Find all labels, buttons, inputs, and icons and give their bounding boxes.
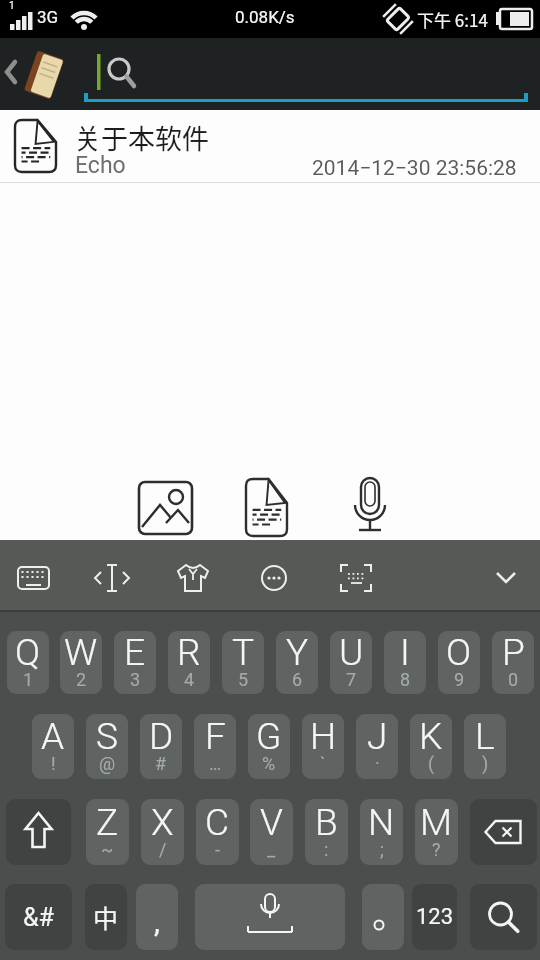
staticText: : [324,839,329,860]
button[interactable]: Q [7,631,49,694]
button[interactable]: A [32,714,74,779]
staticText: 0.08K/s [235,7,295,27]
staticText: # [155,753,167,774]
button[interactable] [0,110,540,183]
staticText: M [420,801,453,844]
staticText: 4 [184,669,195,690]
staticText: 3G [37,7,59,27]
button[interactable]: X [141,799,184,865]
button[interactable] [171,556,215,600]
button[interactable] [0,38,40,110]
button[interactable]: L [464,714,506,779]
button[interactable] [195,884,345,950]
button[interactable]: 123 [412,884,457,950]
staticText: Z [96,801,119,844]
staticText: U [339,631,364,674]
staticText: ! [51,753,56,774]
staticText: K [419,715,443,758]
button[interactable]: O [438,631,480,694]
staticText: 关于本软件 [74,118,209,157]
staticText: O [446,631,472,674]
button[interactable]: K [410,714,452,779]
staticText: &# [23,903,54,932]
staticText: - [215,839,220,860]
button[interactable]: M [415,799,458,865]
button[interactable]: J [356,714,398,779]
staticText: ` [320,753,326,774]
button[interactable] [132,475,198,541]
staticText: N [368,801,395,844]
button[interactable] [12,556,56,600]
staticText: V [260,801,283,844]
button[interactable] [470,884,537,950]
button[interactable]: F [194,714,236,779]
button[interactable]: , [136,884,178,950]
button[interactable]: U [330,631,372,694]
staticText: · [375,753,380,774]
button[interactable] [342,472,398,542]
button[interactable] [6,799,71,865]
staticText: 3 [130,669,141,690]
button[interactable]: V [250,799,293,865]
staticText: @ [99,753,116,774]
button[interactable]: E [114,631,156,694]
button[interactable] [484,556,528,600]
button[interactable]: B [305,799,348,865]
staticText: 9 [454,669,465,690]
button[interactable] [90,556,134,600]
staticText: H [310,715,337,758]
button[interactable]: N [360,799,403,865]
staticText: Q [15,631,41,674]
staticText: R [177,631,201,674]
staticText: , [154,904,160,939]
button[interactable]: Y [276,631,318,694]
staticText: _ [267,839,276,860]
button[interactable]: G [248,714,290,779]
staticText: ) [482,753,489,774]
button[interactable] [470,799,537,865]
staticText: ? [432,839,441,860]
button[interactable] [362,884,404,950]
staticText: ( [428,753,435,774]
staticText: B [315,801,338,844]
staticText: 7 [346,669,357,690]
staticText: ~ [101,839,114,860]
staticText: J [367,715,388,758]
button[interactable]: C [196,799,239,865]
button[interactable]: Z [86,799,129,865]
button[interactable]: I [384,631,426,694]
staticText: X [151,801,174,844]
button[interactable]: S [86,714,128,779]
button[interactable]: P [492,631,534,694]
staticText: … [209,753,222,774]
button[interactable]: R [168,631,210,694]
staticText: 1 [9,0,15,12]
button[interactable]: H [302,714,344,779]
staticText: L [475,715,495,758]
button[interactable] [252,556,296,600]
staticText: 1 [23,669,34,690]
button[interactable]: D [140,714,182,779]
button[interactable]: &# [5,884,72,950]
staticText: Echo [75,152,126,179]
staticText: 2 [76,669,87,690]
staticText: D [149,715,174,758]
staticText: 6 [292,669,303,690]
staticText: A [41,715,65,758]
staticText: 123 [416,904,454,930]
button[interactable] [84,44,528,104]
staticText: P [502,631,525,674]
staticText: 2014−12−30 23:56:28 [312,156,517,181]
staticText: C [205,801,230,844]
button[interactable] [238,472,296,542]
staticText: / [159,839,167,860]
staticText: % [262,753,276,774]
staticText: 0 [508,669,519,690]
staticText: W [64,631,98,674]
button[interactable]: T [222,631,264,694]
staticText: 中 [93,899,119,935]
staticText: E [124,631,146,674]
button[interactable] [334,556,378,600]
button[interactable]: 中 [85,884,127,950]
button[interactable]: W [60,631,102,694]
